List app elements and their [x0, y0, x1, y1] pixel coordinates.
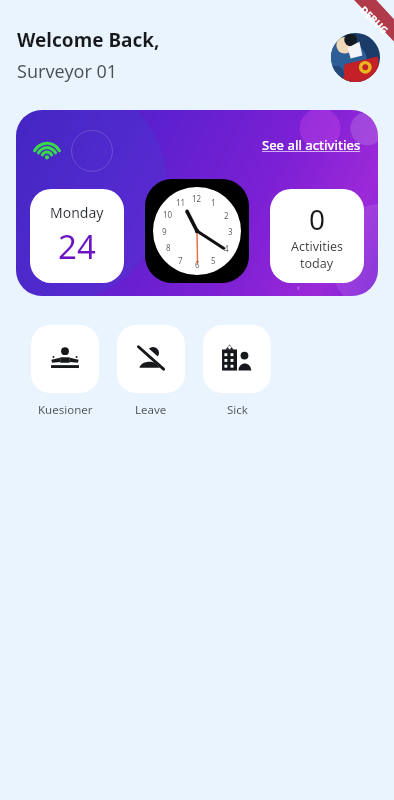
staticText: Sick [227, 402, 248, 418]
staticText: Leave [135, 402, 167, 418]
button[interactable]: See all activities [262, 136, 361, 154]
staticText: 7 [178, 255, 183, 266]
button[interactable]: Leave [117, 325, 185, 418]
button[interactable]: Monday [30, 189, 124, 283]
staticText: DEBUG [357, 3, 392, 37]
staticText: 5 [211, 255, 216, 266]
staticText: 2 [224, 210, 229, 221]
staticText: 8 [166, 242, 171, 253]
button[interactable]: Kuesioner [31, 325, 99, 418]
staticText: Welcome Back, [17, 27, 160, 53]
staticText: 0 [309, 200, 326, 238]
button[interactable]: Profile [331, 33, 380, 82]
staticText: 9 [162, 226, 167, 237]
staticText: today [300, 255, 334, 272]
staticText: 4 [224, 243, 229, 254]
button[interactable]: Connection status [34, 136, 60, 162]
staticText: Monday [50, 203, 104, 222]
staticText: 3 [228, 226, 233, 237]
staticText: 12 [192, 193, 202, 204]
staticText: Activities [291, 238, 344, 255]
staticText: 24 [58, 224, 96, 269]
staticText: 11 [176, 197, 186, 208]
button[interactable]: Sick [203, 325, 271, 418]
button[interactable]: 0 [270, 189, 364, 283]
staticText: See all activities [262, 136, 361, 154]
button[interactable]: Clock [145, 179, 249, 283]
staticText: 10 [163, 209, 173, 220]
button[interactable]: Connection status [16, 110, 378, 296]
staticText: Surveyor 01 [17, 59, 118, 84]
staticText: Kuesioner [38, 402, 93, 418]
staticText: 6 [195, 259, 200, 270]
staticText: 1 [211, 197, 216, 208]
